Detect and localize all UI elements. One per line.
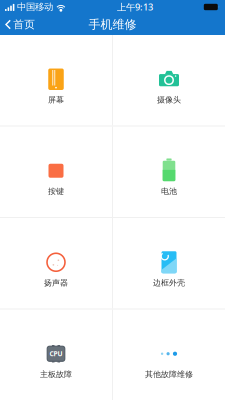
staticText: 上午9:13: [117, 1, 153, 13]
staticText: 按键: [48, 186, 64, 196]
staticText: 电池: [161, 186, 177, 196]
button[interactable]: CPU: [0, 309, 112, 400]
staticText: 摄像头: [157, 95, 181, 105]
staticText: 手机维修: [88, 17, 136, 32]
staticText: 屏幕: [48, 95, 64, 105]
button[interactable]: 其他故障维修: [113, 309, 225, 400]
staticText: 中国移动: [17, 1, 53, 13]
button[interactable]: 扬声器: [0, 218, 112, 308]
staticText: 扬声器: [44, 278, 68, 288]
button[interactable]: 边框外壳: [113, 218, 225, 308]
staticText: 其他故障维修: [145, 369, 193, 379]
button[interactable]: 屏幕: [0, 35, 112, 125]
staticText: 边框外壳: [153, 278, 185, 288]
button[interactable]: 摄像头: [113, 35, 225, 125]
staticText: 主板故障: [40, 369, 72, 379]
button[interactable]: 电池: [113, 126, 225, 217]
button[interactable]: 按键: [0, 126, 112, 217]
button[interactable]: 首页: [0, 14, 40, 35]
staticText: CPU: [49, 349, 62, 358]
staticText: 首页: [13, 18, 35, 31]
